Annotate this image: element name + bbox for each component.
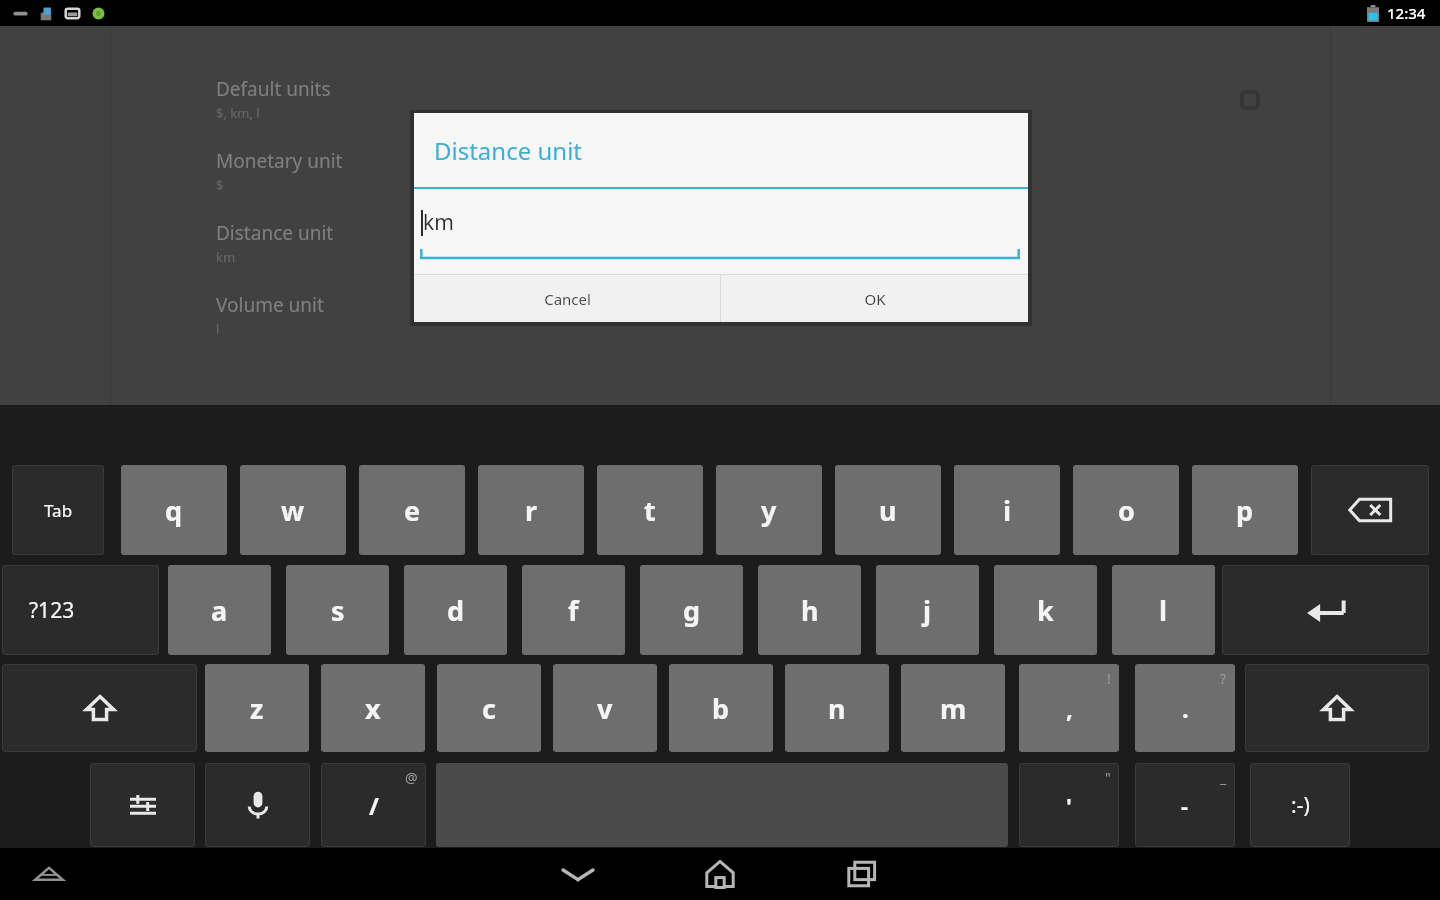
button[interactable]: z	[205, 664, 309, 752]
button[interactable]: Checkbox	[1239, 89, 1261, 111]
button[interactable]: Shift	[1245, 664, 1429, 752]
button[interactable]: Symbols	[2, 565, 159, 655]
button[interactable]: l	[1112, 565, 1215, 655]
staticText: Distance unit	[216, 220, 334, 246]
button[interactable]: Tab	[12, 465, 104, 555]
staticText: o	[1118, 492, 1135, 529]
button[interactable]: @	[321, 763, 426, 847]
staticText: .	[1182, 692, 1189, 725]
button[interactable]: k	[994, 565, 1097, 655]
staticText: /	[369, 789, 379, 822]
staticText: l	[216, 320, 220, 338]
staticText: b	[712, 690, 730, 727]
staticText: a	[211, 592, 228, 629]
button[interactable]: r	[478, 465, 584, 555]
button[interactable]: t	[597, 465, 703, 555]
button[interactable]: s	[286, 565, 389, 655]
staticText: n	[828, 690, 846, 727]
staticText: h	[801, 592, 819, 629]
staticText: j	[923, 592, 932, 629]
button[interactable]: Distance unit	[216, 220, 516, 266]
staticText: m	[940, 690, 967, 727]
button[interactable]: "	[1019, 763, 1119, 847]
button[interactable]: Input options	[90, 763, 195, 847]
staticText: _	[1220, 768, 1227, 787]
button[interactable]: i	[954, 465, 1060, 555]
button[interactable]: Home	[680, 848, 760, 900]
button[interactable]: OK	[721, 275, 1028, 322]
button[interactable]: Cancel	[414, 275, 720, 322]
staticText: z	[250, 690, 264, 727]
button[interactable]: b	[669, 664, 773, 752]
button[interactable]: Hide keyboard	[538, 848, 618, 900]
button[interactable]: d	[404, 565, 507, 655]
staticText: ,	[1066, 692, 1073, 725]
staticText: OK	[864, 289, 886, 309]
staticText: l	[1159, 592, 1168, 629]
button[interactable]: j	[876, 565, 979, 655]
staticText: i	[1003, 492, 1012, 529]
staticText: Tab	[44, 499, 73, 522]
staticText: p	[1236, 492, 1254, 529]
button[interactable]: x	[321, 664, 425, 752]
button[interactable]: c	[437, 664, 541, 752]
button[interactable]: Monetary unit	[216, 148, 516, 194]
button[interactable]: Default units	[216, 76, 516, 122]
button[interactable]: Volume unit	[216, 292, 516, 338]
button[interactable]: p	[1192, 465, 1298, 555]
staticText: u	[879, 492, 897, 529]
button[interactable]: g	[640, 565, 743, 655]
staticText: g	[683, 592, 701, 629]
button[interactable]: o	[1073, 465, 1179, 555]
button[interactable]: u	[835, 465, 941, 555]
staticText: km	[216, 248, 236, 266]
staticText: c	[482, 690, 496, 727]
button[interactable]: e	[359, 465, 465, 555]
staticText: x	[365, 690, 381, 727]
staticText: r	[525, 492, 538, 529]
button[interactable]: w	[240, 465, 346, 555]
staticText: '	[1066, 790, 1072, 820]
button[interactable]: h	[758, 565, 861, 655]
staticText: ?	[1220, 669, 1227, 688]
button[interactable]: ?	[1135, 664, 1235, 752]
staticText: f	[568, 592, 579, 629]
button[interactable]: Enter	[1222, 565, 1429, 655]
staticText: 12:34	[1387, 3, 1426, 23]
button[interactable]: :-)	[1250, 763, 1350, 847]
staticText: !	[1107, 669, 1111, 688]
button[interactable]: Recent apps	[822, 848, 902, 900]
button[interactable]: Shift	[2, 664, 197, 752]
button[interactable]: Switch input method	[24, 848, 74, 900]
staticText: ?123	[29, 596, 75, 625]
button[interactable]: f	[522, 565, 625, 655]
button[interactable]: y	[716, 465, 822, 555]
button[interactable]: n	[785, 664, 889, 752]
staticText: -	[1181, 790, 1189, 820]
staticText: km	[423, 208, 454, 237]
button[interactable]: !	[1019, 664, 1119, 752]
button[interactable]: v	[553, 664, 657, 752]
staticText: w	[281, 492, 305, 529]
button[interactable]: Voice input	[205, 763, 310, 847]
staticText: y	[761, 492, 777, 529]
staticText: "	[1105, 768, 1111, 787]
staticText: $	[216, 176, 224, 194]
staticText: $, km, l	[216, 104, 260, 122]
button[interactable]: _	[1135, 763, 1235, 847]
staticText: q	[165, 492, 183, 529]
staticText: Volume unit	[216, 292, 324, 318]
staticText: e	[404, 492, 421, 529]
staticText: t	[644, 492, 656, 529]
button[interactable]: m	[901, 664, 1005, 752]
staticText: Default units	[216, 76, 331, 102]
staticText: k	[1037, 592, 1054, 629]
staticText: d	[447, 592, 465, 629]
staticText: s	[331, 592, 345, 629]
staticText: Distance unit	[434, 134, 582, 167]
button[interactable]: Backspace	[1311, 465, 1429, 555]
staticText: :-)	[1291, 791, 1310, 820]
button[interactable]: q	[121, 465, 227, 555]
button[interactable]: a	[168, 565, 271, 655]
